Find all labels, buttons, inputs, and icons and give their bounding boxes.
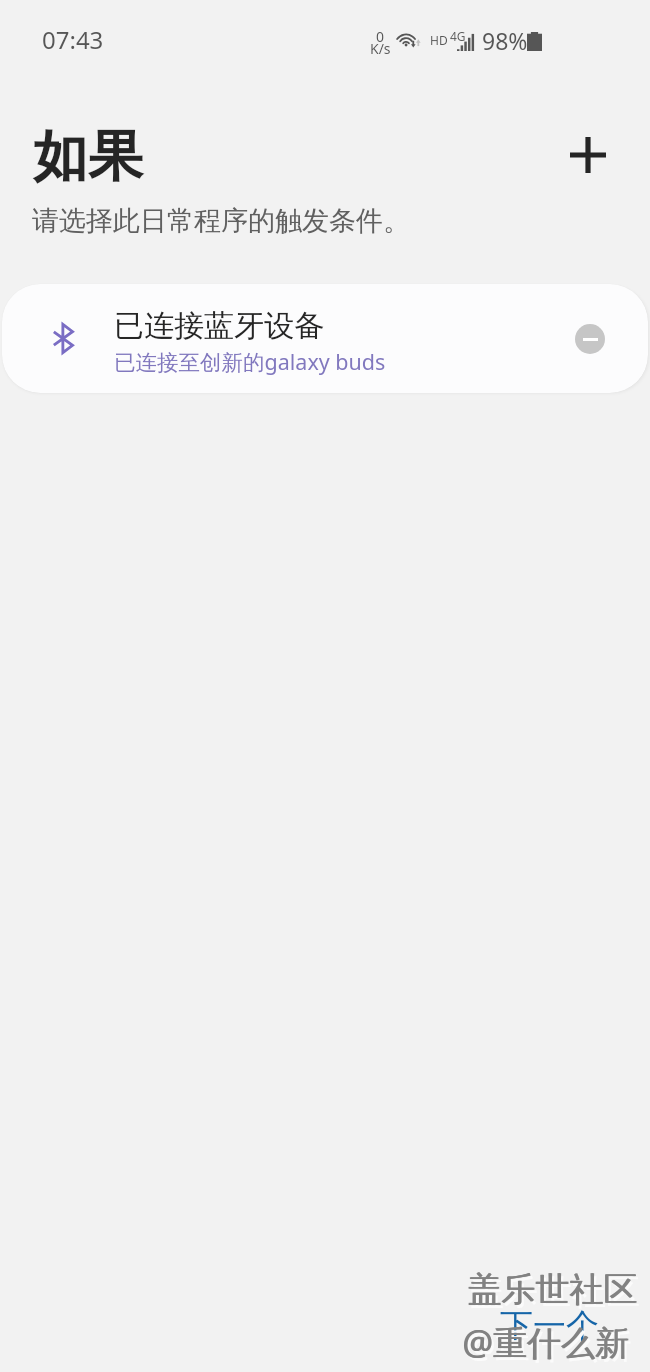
- staticText: 0: [376, 27, 385, 46]
- staticText: 07:43: [42, 23, 104, 56]
- staticText: 下一个: [500, 1305, 599, 1347]
- button[interactable]: Remove: [575, 324, 605, 354]
- staticText: 已连接蓝牙设备: [114, 307, 324, 345]
- staticText: 如果: [33, 122, 143, 191]
- staticText: 请选择此日常程序的触发条件。: [32, 204, 410, 238]
- staticText: @重什么新: [463, 1319, 630, 1365]
- staticText: @重什么新: [462, 1319, 629, 1365]
- button[interactable]: Add: [560, 129, 616, 185]
- button[interactable]: 已连接蓝牙设备: [2, 284, 648, 393]
- staticText: 盖乐世社区: [467, 1268, 637, 1311]
- staticText: 98%: [482, 25, 528, 56]
- staticText: HD: [430, 32, 448, 48]
- staticText: @重什么新: [465, 1322, 632, 1368]
- staticText: 盖乐世社区: [470, 1271, 640, 1314]
- staticText: 4G: [450, 28, 466, 44]
- staticText: 盖乐世社区: [468, 1268, 638, 1311]
- staticText: 已连接至创新的galaxy buds: [114, 347, 386, 376]
- staticText: K/s: [370, 39, 391, 58]
